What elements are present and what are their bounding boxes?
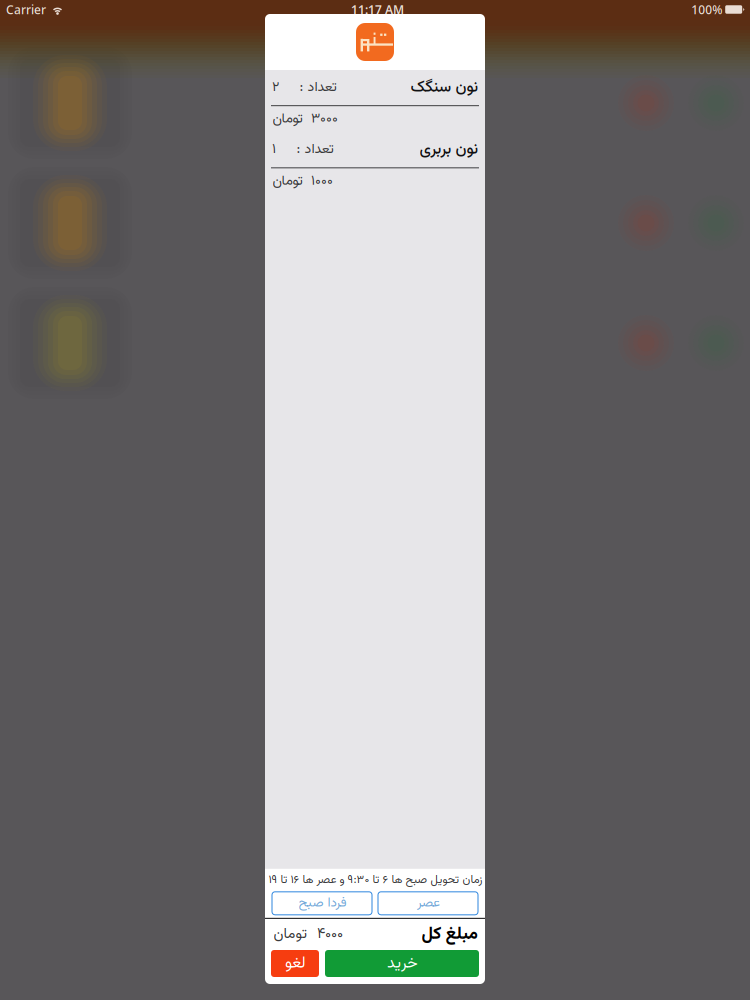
staticText: تومان (272, 108, 302, 130)
staticText: مبلغ کل (421, 921, 477, 948)
staticText: خرید (386, 951, 417, 976)
staticText: نون سنگک (410, 75, 478, 100)
staticText: ۱ (272, 139, 276, 161)
staticText: ۱۰۰۰ (311, 170, 333, 192)
button[interactable]: فردا صبح (272, 892, 372, 915)
staticText: زمان تحویل صبح ها ۶ تا ۹:۳۰ و عصر ها ۱۶ … (268, 871, 482, 889)
staticText: Carrier (6, 1, 46, 17)
staticText: تعداد : (296, 139, 333, 161)
staticText: تعداد : (299, 77, 336, 98)
staticText: ۴۰۰۰ (317, 923, 343, 946)
button[interactable]: عصر (378, 892, 478, 915)
staticText: تومان (273, 923, 306, 946)
staticText: ۲ (272, 77, 279, 98)
staticText: 100% (691, 1, 722, 17)
staticText: لغو (284, 951, 305, 976)
staticText: تومان (272, 170, 302, 192)
staticText: عصر (416, 893, 439, 914)
staticText: نون بربری (419, 137, 478, 162)
staticText: فردا صبح (298, 893, 346, 914)
button[interactable]: خرید (325, 950, 479, 977)
button[interactable]: لغو (271, 950, 319, 977)
staticText: 11:17 AM (351, 1, 404, 17)
staticText: ۳۰۰۰ (311, 108, 338, 130)
